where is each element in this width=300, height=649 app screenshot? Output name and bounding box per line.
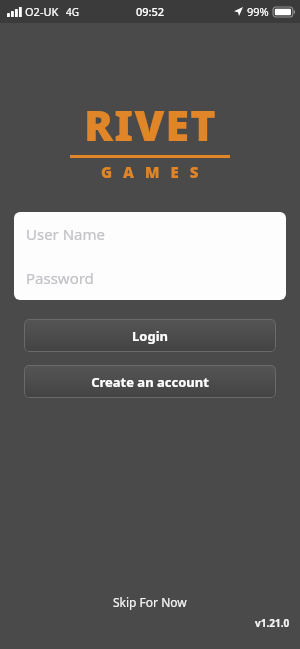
button[interactable]: Create an account <box>24 365 276 398</box>
button[interactable]: Skip For Now <box>103 591 197 613</box>
staticText: Password <box>26 268 94 288</box>
staticText: 09:52 <box>136 4 165 19</box>
staticText: Login <box>132 327 168 345</box>
staticText: User Name <box>26 224 106 244</box>
staticText: RIVET <box>84 95 217 154</box>
staticText: Create an account <box>91 373 209 391</box>
staticText: v1.21.0 <box>255 616 290 630</box>
button[interactable]: User Name <box>14 212 286 256</box>
staticText: GAMES <box>101 162 210 182</box>
staticText: Skip For Now <box>113 594 187 610</box>
button[interactable]: Password <box>14 256 286 300</box>
button[interactable]: Login <box>24 319 276 352</box>
staticText: 99% <box>247 4 269 19</box>
staticText: O2-UK <box>25 4 59 19</box>
staticText: 4G <box>66 5 79 19</box>
